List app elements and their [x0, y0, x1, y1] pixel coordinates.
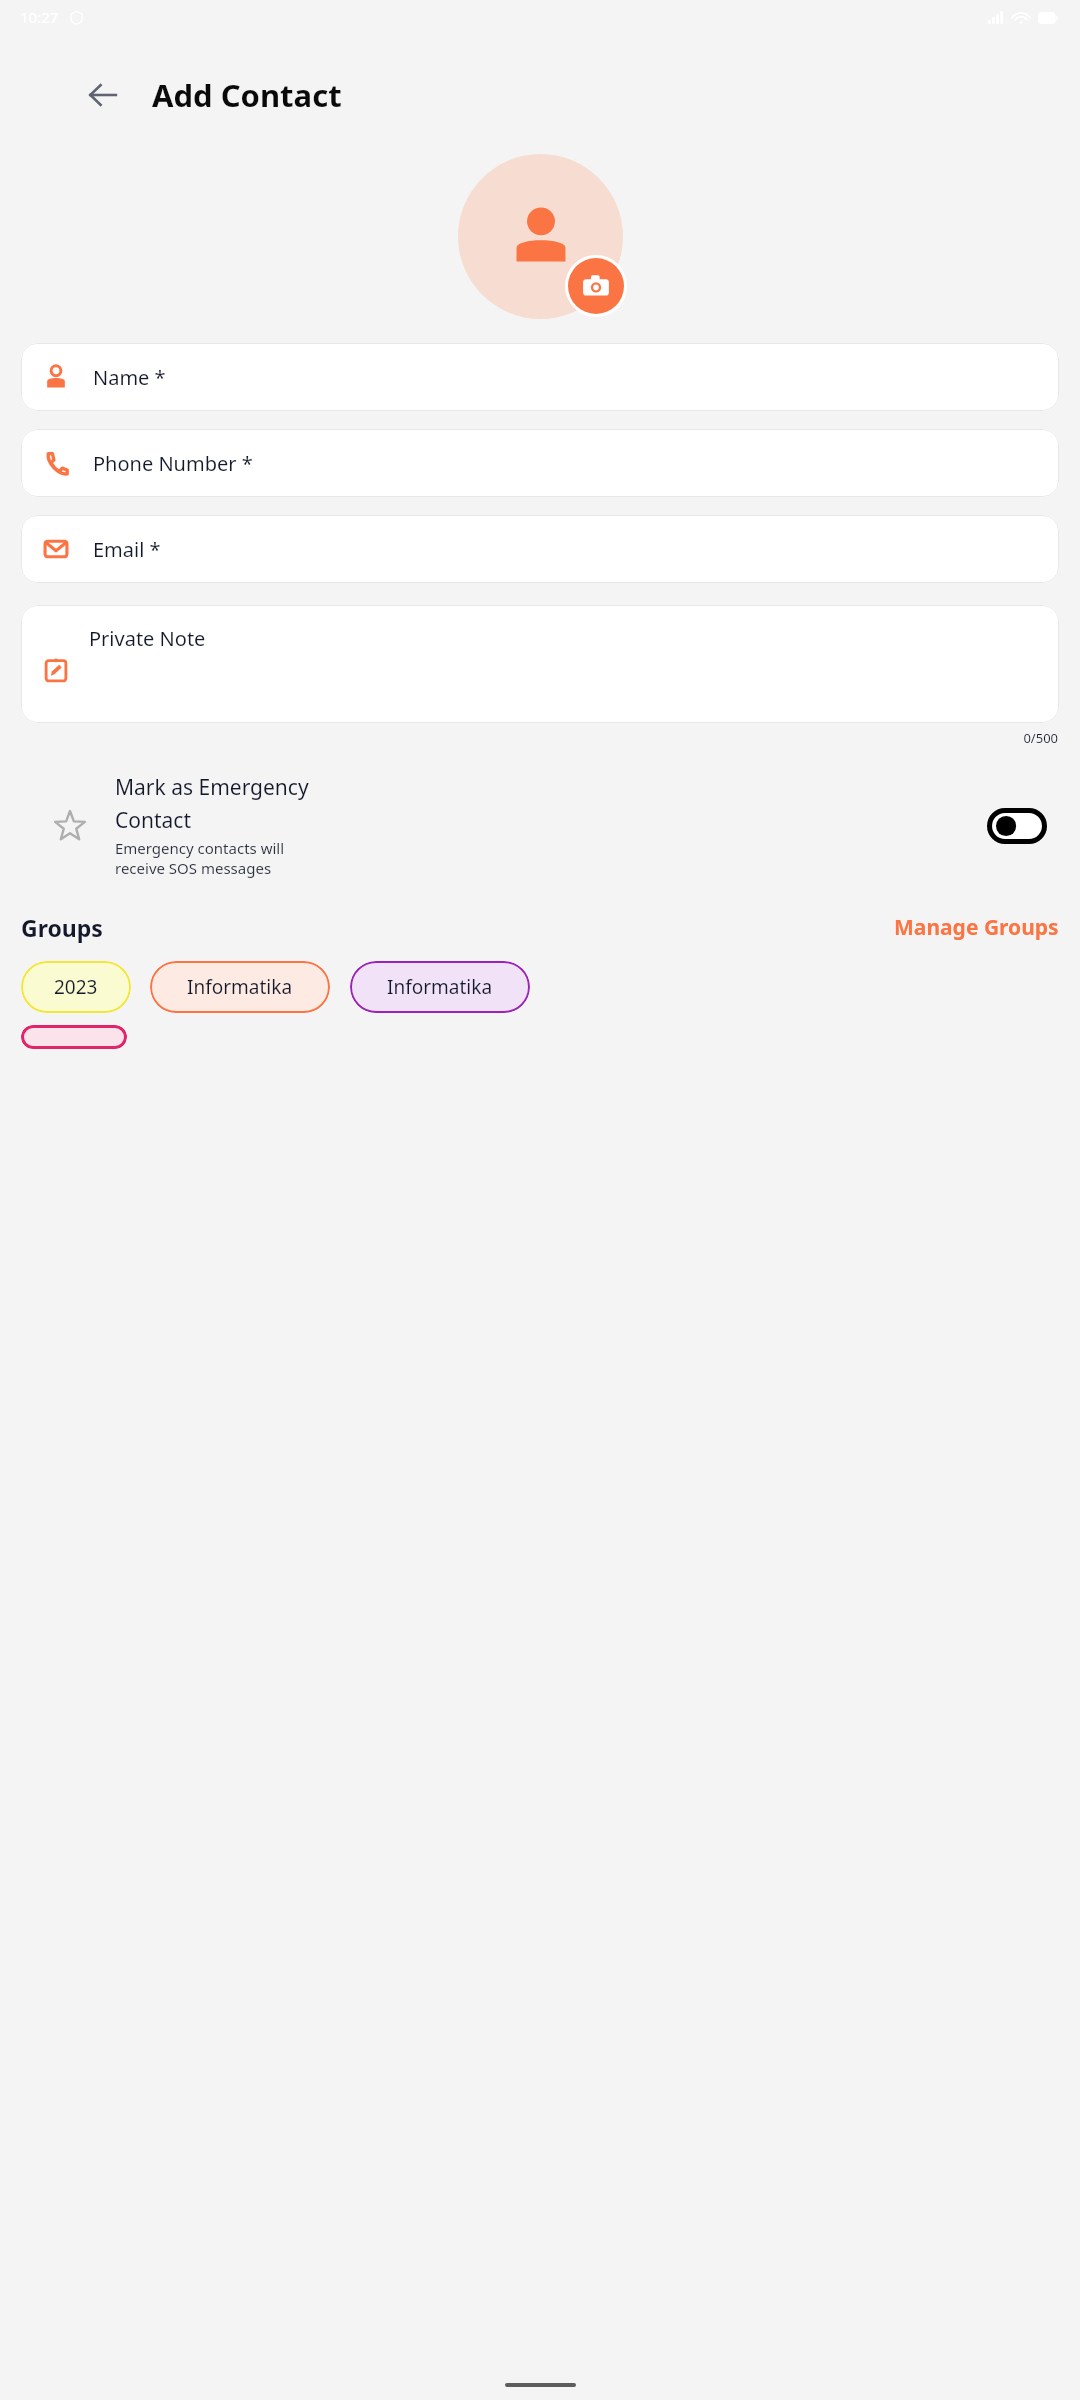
- staticText: Add Contact: [152, 74, 342, 116]
- staticText: Phone Number *: [93, 450, 253, 477]
- button[interactable]: Emergency contact toggle: [987, 808, 1047, 844]
- staticText: Manage Groups: [894, 913, 1059, 942]
- staticText: 2023: [54, 974, 98, 1000]
- button[interactable]: Groups: [21, 912, 103, 943]
- button[interactable]: Mark as Emergency: [21, 773, 1059, 878]
- staticText: receive SOS messages: [115, 858, 272, 878]
- button[interactable]: Private Note: [21, 605, 1059, 723]
- staticText: Emergency contacts will: [115, 838, 285, 858]
- button[interactable]: Change photo: [568, 258, 624, 314]
- staticText: Contact: [115, 806, 191, 835]
- button[interactable]: Phone Number *: [21, 429, 1059, 497]
- button[interactable]: Back: [80, 72, 126, 118]
- staticText: Mark as Emergency: [115, 773, 309, 802]
- button[interactable]: [21, 1025, 127, 1049]
- staticText: Name *: [93, 364, 166, 391]
- button[interactable]: Manage Groups: [894, 913, 1059, 942]
- button[interactable]: Contact photo: [458, 154, 623, 319]
- staticText: Private Note: [89, 625, 206, 652]
- button[interactable]: Informatika: [350, 961, 530, 1013]
- button[interactable]: 2023: [21, 961, 131, 1013]
- staticText: Email *: [93, 536, 161, 563]
- button[interactable]: Informatika: [150, 961, 330, 1013]
- staticText: Informatika: [387, 974, 493, 1000]
- staticText: 0/500: [0, 729, 1058, 747]
- staticText: 10:27: [20, 7, 59, 27]
- staticText: Informatika: [187, 974, 293, 1000]
- button[interactable]: Name *: [21, 343, 1059, 411]
- button[interactable]: Email *: [21, 515, 1059, 583]
